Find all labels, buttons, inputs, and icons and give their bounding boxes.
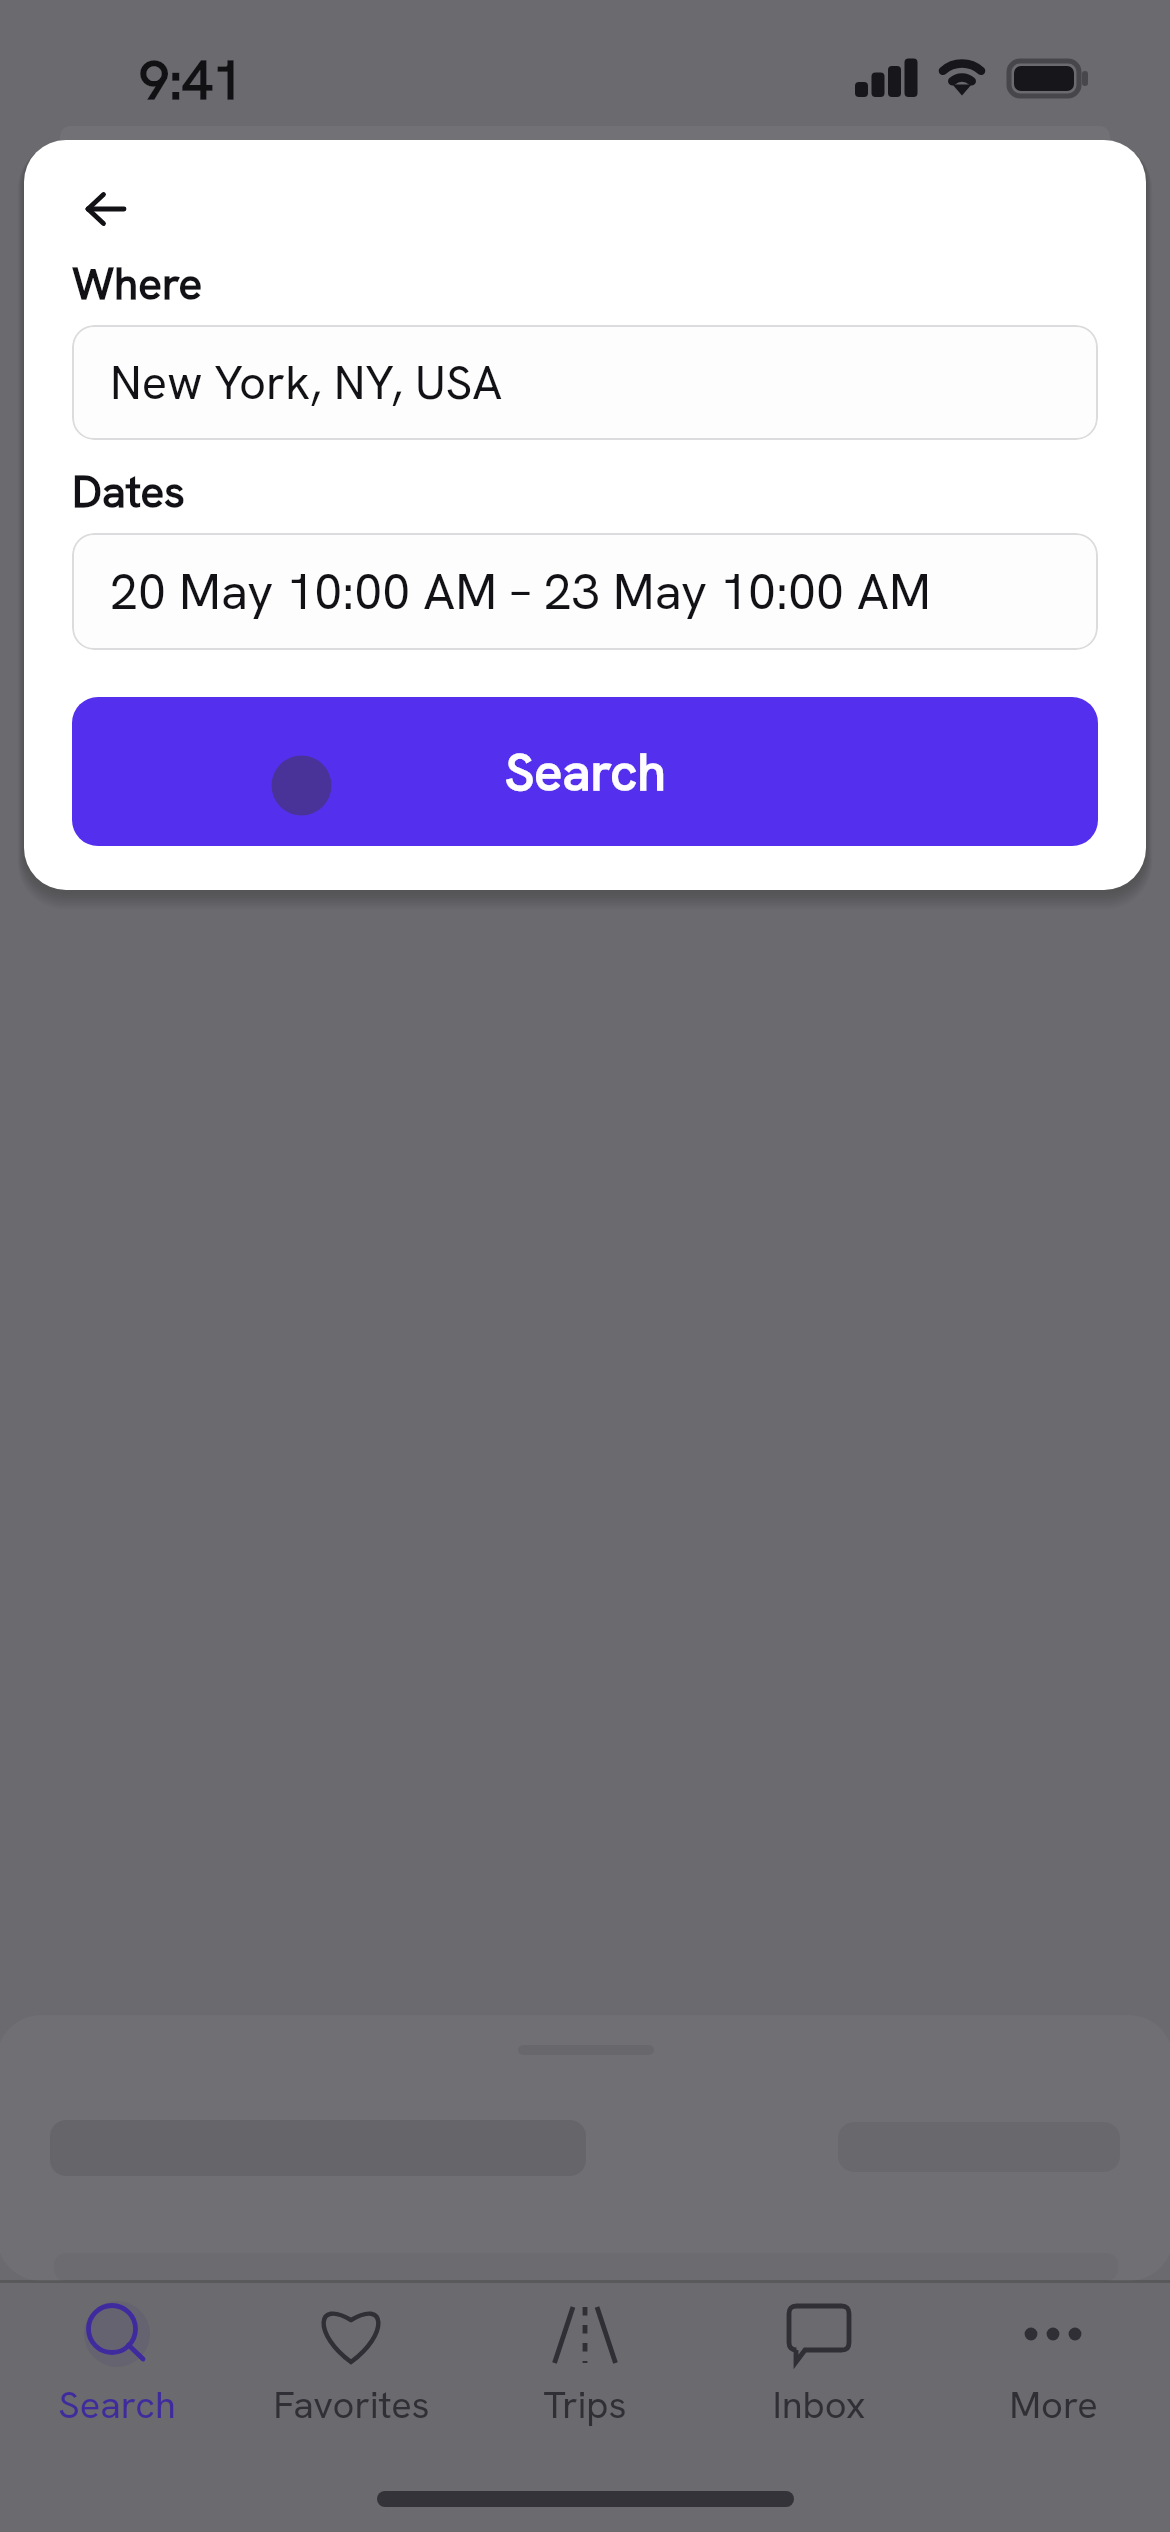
staticText: 9:41 (139, 45, 243, 115)
button[interactable]: New York, NY, USA (72, 325, 1098, 440)
staticText: Search (505, 738, 666, 806)
button[interactable]: Inbox (702, 2278, 936, 2430)
staticText: Inbox (772, 2380, 866, 2430)
staticText: Search (58, 2380, 176, 2430)
button[interactable]: 20 May 10:00 AM – 23 May 10:00 AM (72, 533, 1098, 650)
staticText: 20 May 10:00 AM – 23 May 10:00 AM (110, 559, 931, 624)
button[interactable]: More (936, 2278, 1170, 2430)
button[interactable]: Back (58, 161, 154, 257)
button[interactable]: Search (0, 2278, 234, 2430)
staticText: New York, NY, USA (110, 352, 503, 413)
button[interactable]: Trips (468, 2278, 702, 2430)
button[interactable]: Favorites (234, 2278, 468, 2430)
button[interactable]: Search (72, 697, 1098, 846)
staticText: Favorites (273, 2380, 430, 2430)
staticText: Trips (543, 2380, 627, 2430)
staticText: Where (72, 255, 203, 312)
staticText: Dates (72, 463, 185, 520)
staticText: More (1009, 2380, 1098, 2430)
